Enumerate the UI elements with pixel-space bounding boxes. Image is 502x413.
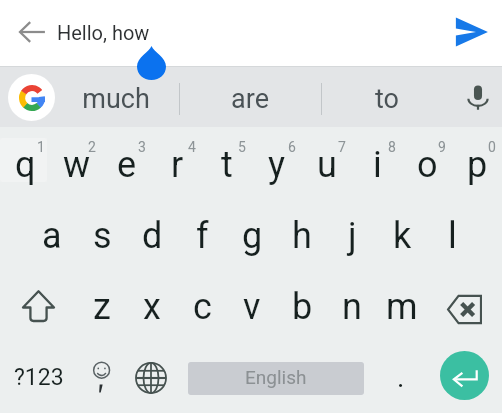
staticText: h <box>292 215 312 257</box>
staticText: f <box>196 215 209 257</box>
staticText: z <box>93 286 111 328</box>
staticText: 1 <box>37 139 45 155</box>
button[interactable]: y <box>252 129 302 200</box>
button[interactable]: z <box>76 271 127 342</box>
button[interactable]: ?123 <box>0 342 77 413</box>
button[interactable]: Google search <box>8 74 55 121</box>
staticText: 0 <box>488 139 496 155</box>
staticText: l <box>448 215 457 257</box>
staticText: a <box>42 215 62 257</box>
button[interactable]: h <box>277 200 327 271</box>
staticText: 2 <box>88 139 96 155</box>
button[interactable]: Back <box>12 12 52 52</box>
button[interactable]: much <box>48 67 183 127</box>
button[interactable]: u <box>302 129 352 200</box>
staticText: 4 <box>188 139 196 155</box>
button[interactable]: Backspace <box>427 271 502 342</box>
button[interactable]: x <box>127 271 177 342</box>
button[interactable]: Emoji <box>77 342 125 413</box>
staticText: p <box>467 144 488 186</box>
button[interactable]: g <box>227 200 277 271</box>
staticText: i <box>373 144 382 186</box>
staticText: y <box>268 144 286 186</box>
button[interactable]: i <box>352 129 402 200</box>
button[interactable]: t <box>202 129 252 200</box>
staticText: much <box>82 83 150 115</box>
button[interactable]: Voice input <box>453 67 502 127</box>
staticText: English <box>245 366 307 388</box>
button[interactable]: s <box>77 200 127 271</box>
staticText: r <box>171 144 184 186</box>
button[interactable]: Send <box>448 9 494 55</box>
button[interactable]: Shift <box>0 271 76 342</box>
staticText: g <box>242 215 263 257</box>
button[interactable]: d <box>127 200 177 271</box>
button[interactable]: Enter <box>427 342 502 413</box>
staticText: 8 <box>388 139 396 155</box>
staticText: k <box>393 215 412 257</box>
staticText: j <box>348 215 357 257</box>
button[interactable]: q <box>0 129 51 200</box>
staticText: o <box>417 144 438 186</box>
button[interactable]: m <box>377 271 427 342</box>
staticText: 5 <box>238 139 246 155</box>
staticText: x <box>143 286 161 328</box>
button[interactable]: e <box>102 129 152 200</box>
button[interactable]: to <box>321 67 453 127</box>
staticText: to <box>375 83 399 115</box>
staticText: are <box>231 83 269 115</box>
button[interactable]: k <box>377 200 427 271</box>
staticText: Hello, how <box>57 21 150 44</box>
staticText: s <box>93 215 112 257</box>
button[interactable]: b <box>277 271 327 342</box>
staticText: 9 <box>438 139 446 155</box>
button[interactable]: n <box>327 271 377 342</box>
button[interactable]: Change language <box>127 342 175 413</box>
button[interactable]: o <box>402 129 452 200</box>
button[interactable]: w <box>51 129 102 200</box>
staticText: d <box>142 215 163 257</box>
button[interactable]: English <box>188 362 364 395</box>
button[interactable]: v <box>227 271 277 342</box>
button[interactable]: l <box>427 200 477 271</box>
staticText: u <box>317 144 337 186</box>
button[interactable]: f <box>177 200 227 271</box>
staticText: . <box>397 361 405 394</box>
staticText: b <box>292 286 313 328</box>
staticText: n <box>342 286 362 328</box>
staticText: m <box>386 286 418 328</box>
button[interactable]: j <box>327 200 377 271</box>
staticText: v <box>243 286 261 328</box>
staticText: ?123 <box>14 364 64 391</box>
staticText: 6 <box>288 139 296 155</box>
button[interactable]: r <box>152 129 202 200</box>
staticText: e <box>117 144 137 186</box>
staticText: q <box>15 144 36 186</box>
staticText: c <box>193 286 212 328</box>
staticText: t <box>221 144 233 186</box>
button[interactable]: p <box>452 129 502 200</box>
staticText: 7 <box>338 139 346 155</box>
staticText: w <box>63 144 91 186</box>
staticText: 3 <box>138 139 146 155</box>
button[interactable]: a <box>26 200 77 271</box>
button[interactable]: . <box>375 342 427 413</box>
button[interactable]: c <box>177 271 227 342</box>
button[interactable]: are <box>179 67 321 127</box>
